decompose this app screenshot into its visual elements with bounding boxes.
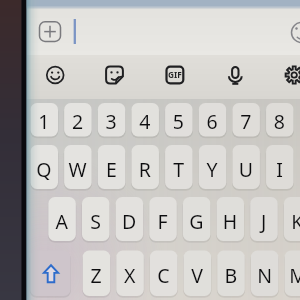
button[interactable]: Phone keyboard [0, 0, 300, 300]
